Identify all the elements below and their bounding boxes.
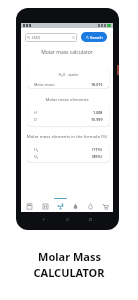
button[interactable]: Calculator (21, 196, 37, 212)
button[interactable]: H₂O - water (28, 68, 109, 88)
staticText: Molar mass calculator (21, 49, 113, 56)
staticText: Molar mass: (34, 82, 56, 87)
button[interactable]: H₂ (28, 144, 109, 162)
button[interactable]: Search (81, 32, 107, 42)
staticText: H (34, 110, 37, 115)
staticText: (89%) (92, 154, 103, 159)
button[interactable]: Store (98, 196, 113, 212)
staticText: CALCULATOR (33, 265, 105, 280)
staticText: Molar mass elements (21, 96, 113, 102)
button[interactable]: Reactions (68, 196, 83, 212)
staticText: H₂ (34, 147, 39, 152)
staticText: 18.015 (91, 82, 103, 87)
button[interactable]: H2O (25, 33, 77, 42)
staticText: H₂O - water (34, 72, 103, 77)
staticText: Molar Mass (38, 249, 101, 264)
staticText: H2O (32, 35, 41, 40)
staticText: H (44, 204, 48, 209)
staticText: 15.999 (91, 117, 103, 122)
staticText: Search (90, 35, 103, 40)
staticText: O (34, 117, 37, 122)
button[interactable]: H (28, 106, 109, 126)
staticText: 1.008 (93, 110, 103, 115)
button[interactable]: Solutions (83, 196, 98, 212)
staticText: O₂ (34, 154, 39, 159)
button[interactable]: Molecules (53, 196, 68, 212)
staticText: Molar mass elements in the formula (%) (21, 133, 113, 139)
staticText: (11%) (92, 147, 103, 152)
button[interactable]: Elements (37, 196, 53, 212)
